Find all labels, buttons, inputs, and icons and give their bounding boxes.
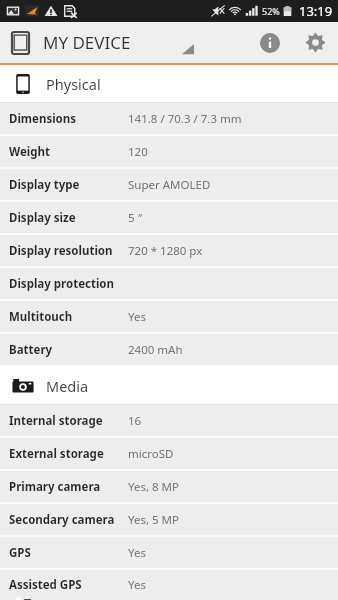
staticText: Display protection: [9, 276, 128, 292]
staticText: 5 ″: [128, 210, 143, 226]
button[interactable]: Battery: [0, 334, 338, 365]
staticText: 141.8 / 70.3 / 7.3 mm: [128, 111, 242, 127]
staticText: Secondary camera: [9, 512, 128, 528]
button[interactable]: External storage: [0, 438, 338, 469]
staticText: Battery: [9, 342, 128, 358]
staticText: Display resolution: [9, 243, 128, 259]
button[interactable]: Display type: [0, 169, 338, 200]
staticText: Yes: [128, 309, 146, 325]
staticText: Multitouch: [9, 309, 128, 325]
staticText: Weight: [9, 144, 128, 160]
button[interactable]: Internal storage: [0, 405, 338, 436]
button[interactable]: MY DEVICE: [0, 22, 139, 63]
button[interactable]: Assisted GPS: [0, 570, 338, 600]
staticText: Dimensions: [9, 111, 128, 127]
staticText: Display type: [9, 177, 128, 193]
button[interactable]: Multitouch: [0, 301, 338, 332]
staticText: microSD: [128, 446, 174, 462]
staticText: Assisted GPS: [9, 577, 128, 593]
button[interactable]: Media: [0, 367, 338, 404]
staticText: 720 * 1280 px: [128, 243, 203, 259]
button[interactable]: Settings: [292, 22, 338, 63]
staticText: 2400 mAh: [128, 342, 183, 358]
staticText: External storage: [9, 446, 128, 462]
staticText: 13:19: [299, 2, 333, 20]
staticText: 52%: [262, 5, 280, 17]
button[interactable]: Open device selector: [182, 44, 194, 56]
button[interactable]: Display size: [0, 202, 338, 233]
staticText: Display size: [9, 210, 128, 226]
staticText: Super AMOLED: [128, 177, 211, 193]
staticText: Media: [46, 376, 89, 396]
button[interactable]: Primary camera: [0, 471, 338, 502]
staticText: Internal storage: [9, 413, 128, 429]
staticText: Yes, 5 MP: [128, 512, 179, 528]
button[interactable]: Display resolution: [0, 235, 338, 266]
button[interactable]: Info: [248, 22, 292, 63]
button[interactable]: GPS: [0, 537, 338, 568]
staticText: Yes: [128, 577, 146, 593]
staticText: MY DEVICE: [43, 31, 131, 54]
button[interactable]: Physical: [0, 65, 338, 102]
staticText: Yes, 8 MP: [128, 479, 179, 495]
staticText: GPS: [9, 545, 128, 561]
button[interactable]: Dimensions: [0, 103, 338, 134]
staticText: Physical: [46, 74, 101, 94]
staticText: Primary camera: [9, 479, 128, 495]
button[interactable]: Weight: [0, 136, 338, 167]
button[interactable]: Display protection: [0, 268, 338, 299]
staticText: Yes: [128, 545, 146, 561]
staticText: 16: [128, 413, 142, 429]
button[interactable]: Secondary camera: [0, 504, 338, 535]
staticText: 120: [128, 144, 148, 160]
